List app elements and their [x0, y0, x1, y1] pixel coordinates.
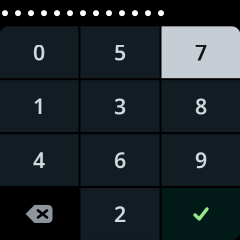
button[interactable]: 9	[161, 134, 240, 186]
staticText: 8	[195, 92, 207, 120]
button[interactable]: 6	[80, 134, 159, 186]
staticText: 3	[114, 92, 126, 120]
staticText: 6	[114, 146, 126, 174]
button[interactable]: 1	[0, 80, 78, 132]
staticText: 2	[114, 200, 126, 228]
staticText: 5	[114, 38, 126, 66]
staticText: 9	[195, 146, 207, 174]
button[interactable]: 2	[80, 188, 159, 240]
button[interactable]: Confirm	[161, 188, 240, 240]
button[interactable]: 0	[0, 26, 78, 78]
staticText: 7	[195, 38, 207, 66]
staticText: 1	[33, 92, 45, 120]
button[interactable]: 7	[161, 26, 240, 78]
button[interactable]: Delete	[0, 188, 78, 240]
button[interactable]: 3	[80, 80, 159, 132]
button[interactable]: 8	[161, 80, 240, 132]
staticText: 4	[33, 146, 45, 174]
button[interactable]: 5	[80, 26, 159, 78]
button[interactable]: 4	[0, 134, 78, 186]
staticText: 0	[33, 38, 45, 66]
